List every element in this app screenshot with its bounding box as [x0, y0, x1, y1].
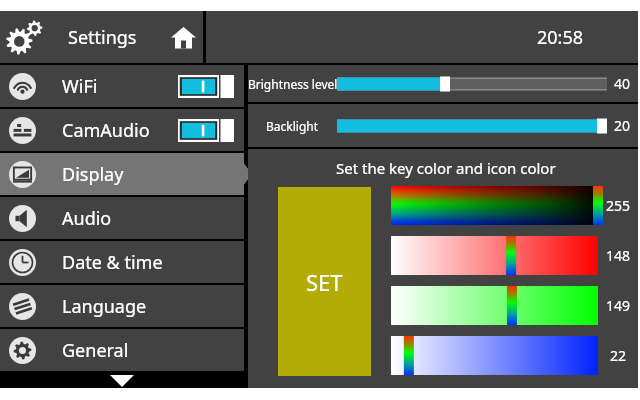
button[interactable]: SET	[278, 187, 371, 376]
button[interactable]: Color channel 255	[391, 186, 598, 225]
button[interactable]: Brightness level	[337, 76, 607, 92]
button[interactable]: Toggle	[178, 75, 234, 98]
staticText: 22	[610, 346, 627, 365]
staticText: 20	[614, 116, 631, 135]
staticText: CamAudio	[62, 118, 150, 143]
staticText: Language	[62, 294, 147, 319]
staticText: 20:58	[537, 25, 584, 50]
button[interactable]: Color channel 149	[391, 286, 598, 325]
button[interactable]: Home	[166, 20, 200, 54]
staticText: Settings	[68, 25, 137, 50]
staticText: WiFi	[62, 74, 98, 99]
button[interactable]: WiFi	[0, 65, 244, 107]
staticText: Display	[62, 162, 124, 187]
staticText: Brightness level	[248, 76, 337, 92]
staticText: Set the key color and icon color	[336, 158, 556, 178]
button[interactable]: General	[0, 329, 244, 371]
button[interactable]: CamAudio	[0, 109, 244, 151]
staticText: Audio	[62, 206, 112, 231]
button[interactable]: Backlight	[337, 118, 607, 134]
staticText: 149	[606, 296, 631, 315]
button[interactable]: Settings	[0, 11, 203, 63]
button[interactable]: Toggle	[178, 119, 234, 142]
staticText: Date & time	[62, 250, 163, 275]
staticText: Backlight	[266, 118, 319, 134]
staticText: General	[62, 338, 129, 363]
staticText: 255	[606, 196, 631, 215]
button[interactable]: Date & time	[0, 241, 244, 283]
button[interactable]: Color channel 148	[391, 236, 598, 275]
button[interactable]: Display	[0, 153, 244, 195]
staticText: SET	[306, 267, 343, 297]
staticText: 40	[614, 74, 631, 93]
button[interactable]: Color channel 22	[391, 336, 598, 375]
button[interactable]: Audio	[0, 197, 244, 239]
staticText: 148	[606, 246, 631, 265]
button[interactable]: Language	[0, 285, 244, 327]
